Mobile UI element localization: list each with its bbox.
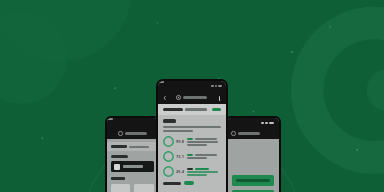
button[interactable] <box>184 181 194 185</box>
staticText: 99.8 <box>176 139 184 144</box>
button[interactable] <box>111 161 154 172</box>
staticText: 73.1 <box>176 154 184 159</box>
button[interactable]: Back <box>161 94 169 102</box>
staticText: 25.4 <box>176 169 184 174</box>
button[interactable] <box>232 175 274 186</box>
button[interactable]: More options <box>215 94 223 102</box>
button[interactable] <box>232 190 274 192</box>
